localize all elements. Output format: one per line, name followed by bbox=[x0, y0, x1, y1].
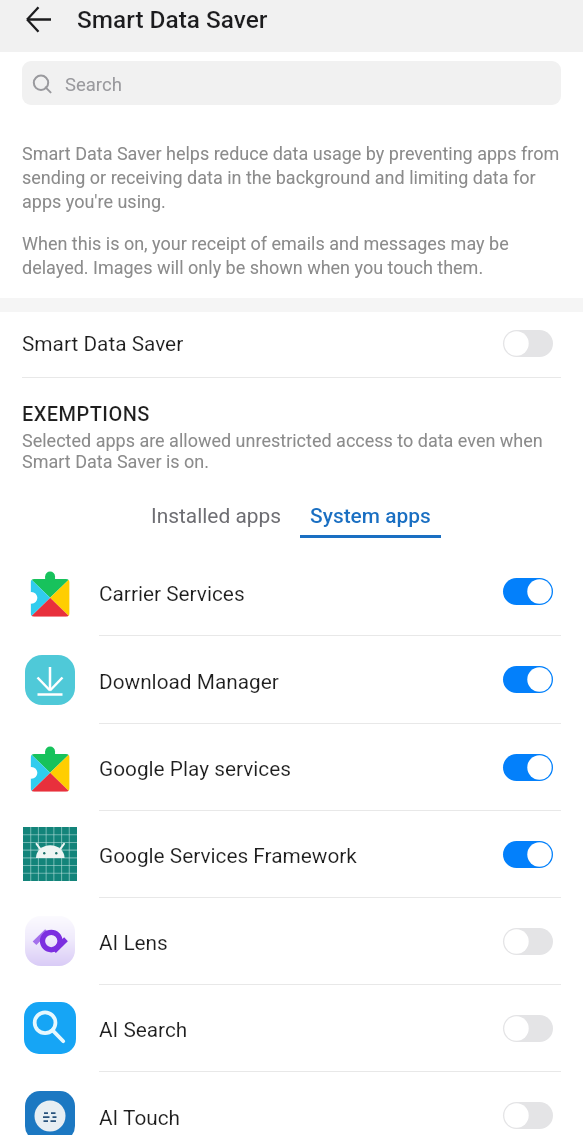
staticText: Installed apps bbox=[151, 504, 282, 528]
staticText: AI Search bbox=[99, 1018, 188, 1042]
button[interactable]: Carrier Services bbox=[0, 548, 583, 635]
button[interactable]: AI Lens bbox=[0, 898, 583, 984]
staticText: Google Play services bbox=[99, 757, 291, 781]
button[interactable]: AI Touch bbox=[0, 1072, 583, 1135]
staticText: EXEMPTIONS bbox=[22, 402, 150, 425]
staticText: System apps bbox=[310, 504, 431, 528]
staticText: When this is on, your receipt of emails … bbox=[22, 233, 567, 278]
button[interactable]: Google Play services bbox=[0, 724, 583, 810]
button[interactable]: Google Services Framework bbox=[0, 811, 583, 897]
staticText: Smart Data Saver bbox=[77, 5, 268, 34]
staticText: Smart Data Saver bbox=[22, 332, 184, 356]
button[interactable]: Download Manager bbox=[0, 636, 583, 723]
staticText: Google Services Framework bbox=[99, 844, 357, 868]
staticText: AI Touch bbox=[99, 1106, 181, 1130]
button[interactable]: Back bbox=[14, 0, 62, 43]
staticText: Carrier Services bbox=[99, 582, 245, 606]
staticText: Download Manager bbox=[99, 670, 279, 694]
staticText: Smart Data Saver helps reduce data usage… bbox=[22, 143, 567, 212]
button[interactable]: Search bbox=[22, 61, 561, 105]
button[interactable]: AI Search bbox=[0, 985, 583, 1071]
button[interactable]: Installed apps bbox=[143, 496, 289, 538]
staticText: Search bbox=[65, 74, 122, 96]
staticText: Selected apps are allowed unrestricted a… bbox=[22, 430, 567, 472]
button[interactable]: Smart Data Saver bbox=[0, 310, 583, 377]
button[interactable]: System apps bbox=[300, 496, 441, 538]
staticText: AI Lens bbox=[99, 931, 168, 955]
